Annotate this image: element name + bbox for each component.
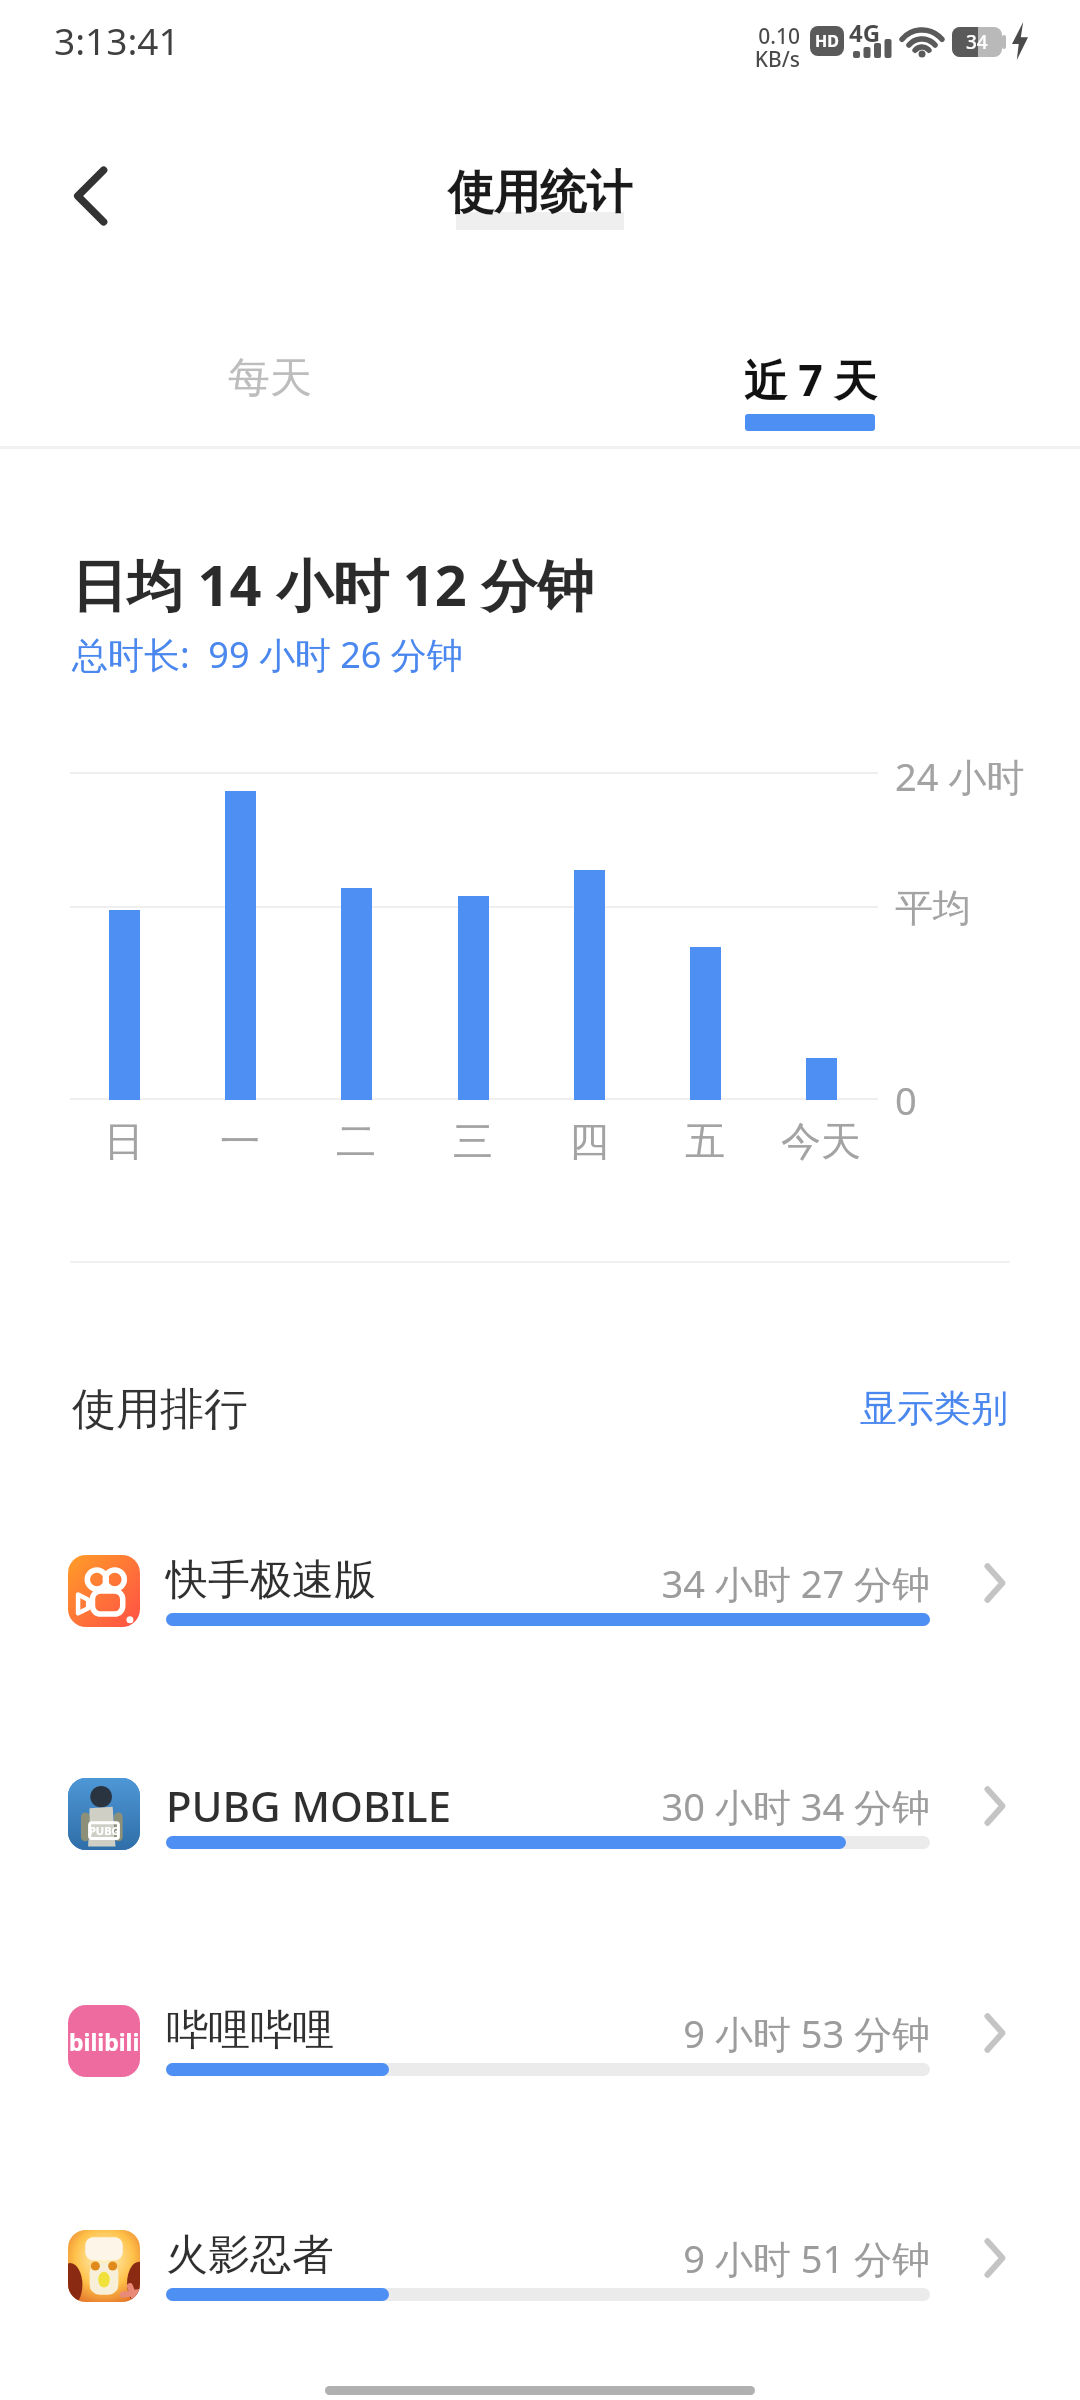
button[interactable]: 每天 (160, 340, 380, 440)
staticText: 9 小时 51 分钟 (683, 2232, 930, 2284)
button[interactable]: 显示类别 (800, 1385, 1008, 1432)
staticText: 哔哩哔哩 (166, 2004, 334, 2057)
button[interactable] (0, 1515, 1080, 1675)
button[interactable] (0, 1738, 1080, 1898)
staticText: 使用排行 (72, 1382, 248, 1437)
staticText: KB/s (752, 45, 800, 74)
staticText: 平均 (895, 884, 971, 932)
staticText: PUBG MOBILE (166, 1777, 452, 1834)
staticText: 今天 (761, 1116, 881, 1166)
staticText: 34 小时 27 分钟 (661, 1557, 930, 1609)
button[interactable]: 近 7 天 (700, 340, 920, 440)
staticText: 34 (966, 29, 988, 55)
staticText: 四 (529, 1116, 649, 1166)
staticText: 快手极速版 (166, 1554, 376, 1607)
staticText: 日 (64, 1116, 184, 1166)
staticText: 近 7 天 (744, 350, 877, 409)
button[interactable] (0, 1965, 1080, 2125)
staticText: 30 小时 34 分钟 (661, 1780, 930, 1832)
button[interactable] (0, 2190, 1080, 2350)
staticText: 三 (413, 1116, 533, 1166)
staticText: 4G (849, 16, 881, 49)
staticText: 9 小时 53 分钟 (683, 2007, 930, 2059)
staticText: 总时长: 99 小时 26 分钟 (72, 630, 463, 679)
staticText: 每天 (228, 352, 312, 405)
staticText: 日均 14 小时 12 分钟 (71, 546, 594, 622)
button[interactable] (56, 162, 124, 230)
staticText: 显示类别 (860, 1385, 1008, 1432)
staticText: bilibili (69, 2026, 140, 2057)
staticText: 五 (645, 1116, 765, 1166)
staticText: 0.10 (756, 22, 800, 51)
staticText: 一 (180, 1116, 300, 1166)
staticText: 火影忍者 (166, 2229, 334, 2282)
staticText: 二 (296, 1116, 416, 1166)
staticText: PUBG (89, 1823, 120, 1838)
staticText: 使用统计 (340, 164, 740, 222)
staticText: 24 小时 (895, 750, 1025, 802)
staticText: HD (815, 30, 839, 52)
staticText: 3:13:41 (54, 15, 180, 65)
staticText: 0 (895, 1074, 917, 1126)
